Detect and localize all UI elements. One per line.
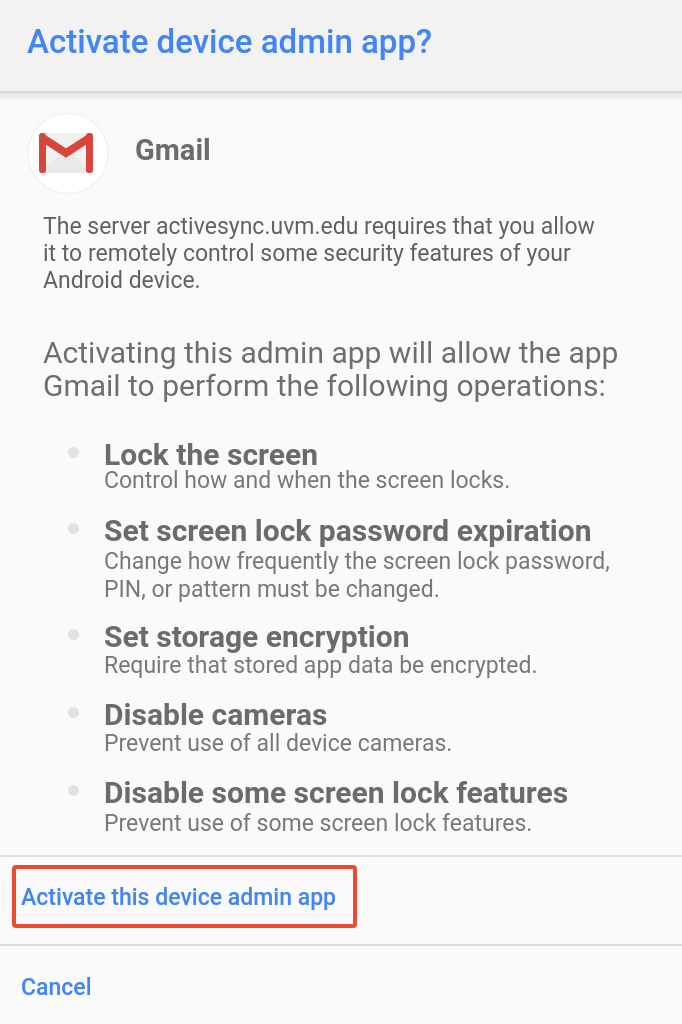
staticText: Require that stored app data be encrypte… <box>104 652 538 679</box>
staticText: Control how and when the screen locks. <box>104 467 511 494</box>
staticText: Prevent use of all device cameras. <box>104 730 453 757</box>
staticText: Disable cameras <box>104 697 328 732</box>
staticText: Set screen lock password expiration <box>104 513 592 548</box>
staticText: Change how frequently the screen lock pa… <box>104 548 610 603</box>
staticText: Prevent use of some screen lock features… <box>104 810 533 837</box>
staticText: Set storage encryption <box>104 619 410 654</box>
staticText: Disable some screen lock features <box>104 775 569 810</box>
staticText: Lock the screen <box>104 437 318 472</box>
staticText: The server activesync.uvm.edu requires t… <box>43 213 595 294</box>
staticText: Gmail <box>135 133 211 167</box>
staticText: Activate this device admin app <box>21 884 337 911</box>
staticText: Activate device admin app? <box>27 22 433 61</box>
staticText: Cancel <box>21 974 92 1001</box>
staticText: Activating this admin app will allow the… <box>43 335 619 403</box>
